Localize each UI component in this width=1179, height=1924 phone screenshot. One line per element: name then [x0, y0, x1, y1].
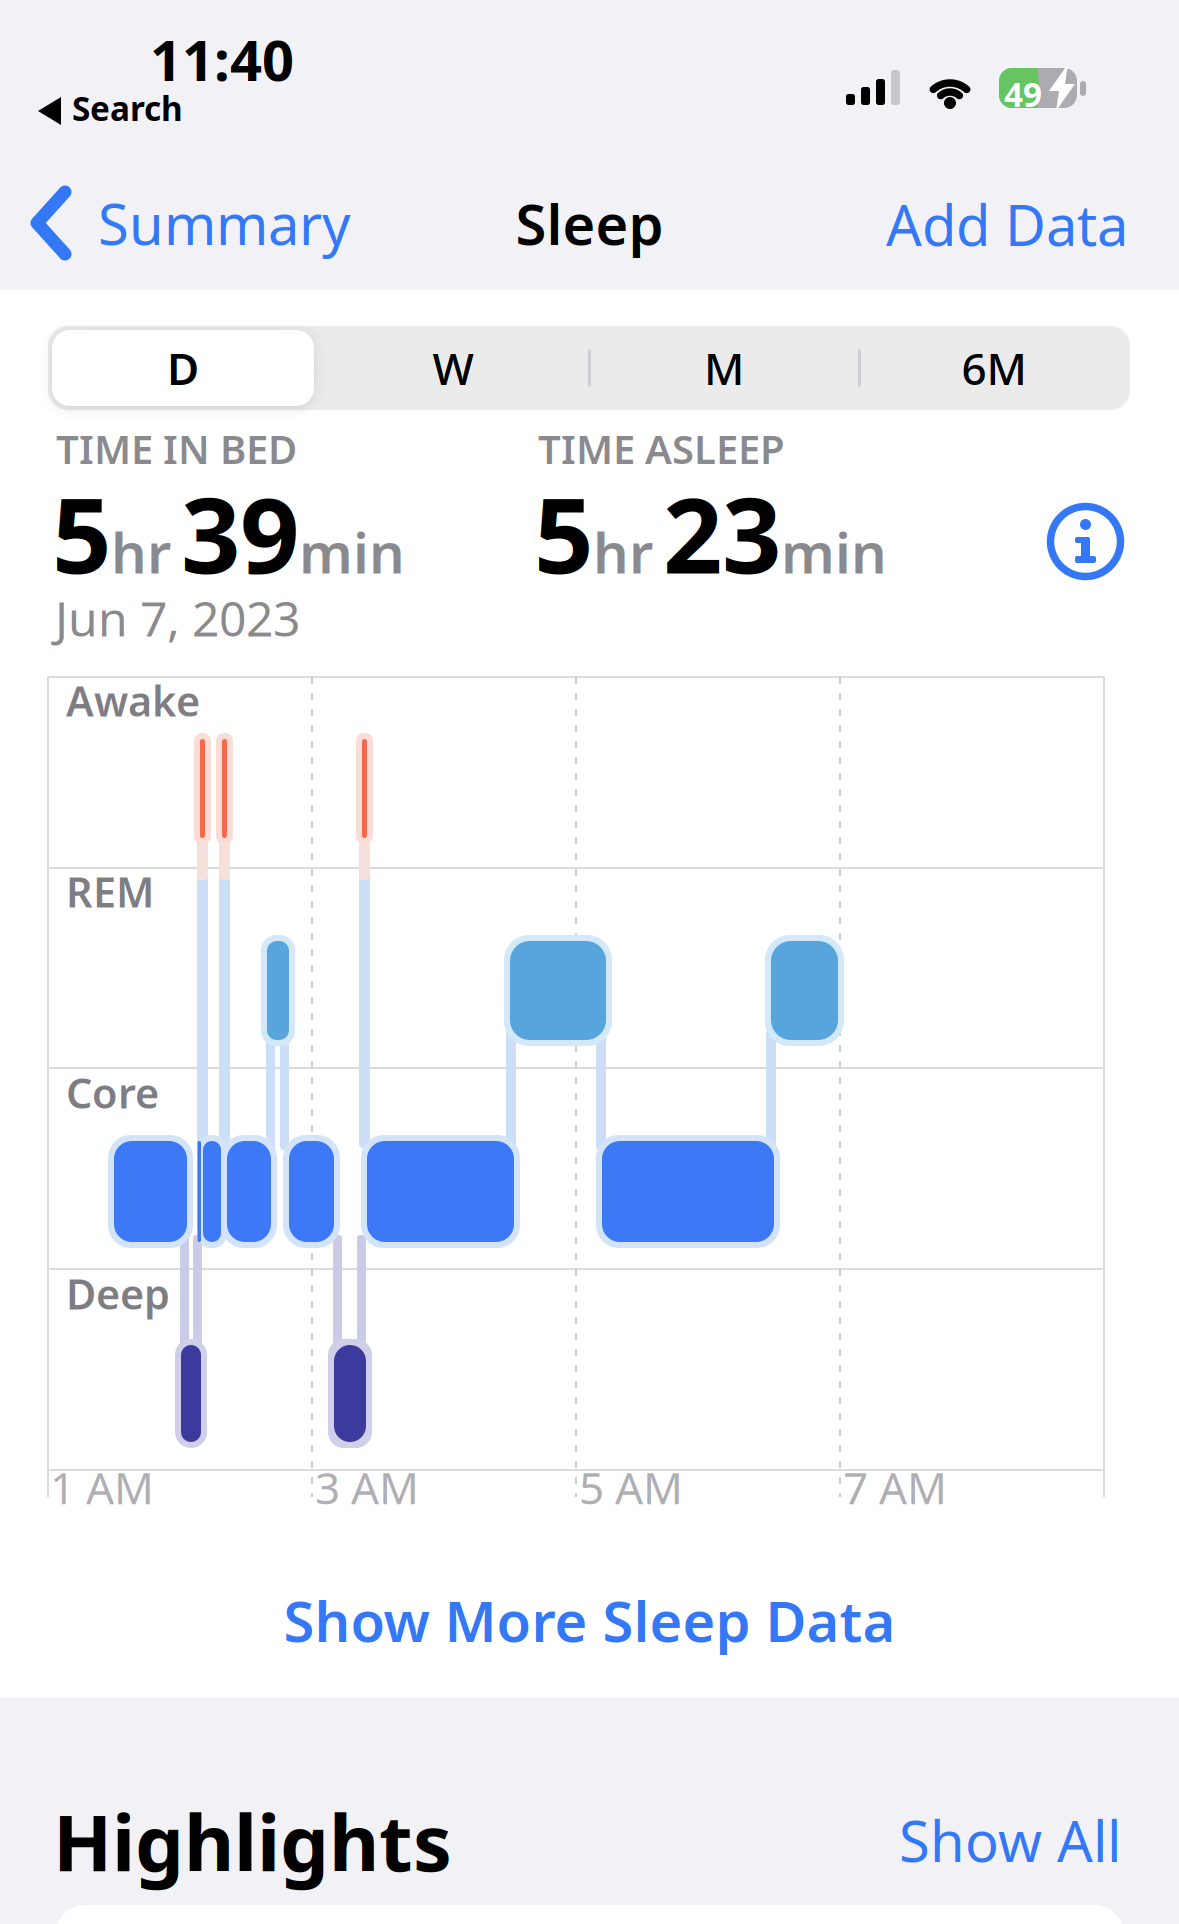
- button[interactable]: M: [589, 326, 859, 410]
- staticText: 5: [534, 464, 593, 602]
- staticText: 39: [181, 464, 299, 602]
- button[interactable]: Show More Sleep Data: [0, 0, 1179, 74]
- staticText: Show All: [899, 1803, 1121, 1877]
- staticText: 5: [52, 464, 111, 602]
- button[interactable]: Show All: [0, 0, 222, 74]
- button[interactable]: Add Data: [0, 0, 242, 74]
- staticText: TIME ASLEEP: [538, 422, 785, 475]
- staticText: 5 AM: [579, 1458, 683, 1516]
- staticText: hr: [593, 514, 653, 589]
- staticText: Summary: [98, 186, 351, 260]
- staticText: Core: [66, 1065, 159, 1120]
- button[interactable]: [0, 0, 1179, 1924]
- button[interactable]: Summary: [0, 0, 1179, 1924]
- staticText: Jun 7, 2023: [55, 586, 300, 650]
- staticText: 1 AM: [50, 1458, 154, 1516]
- staticText: Show More Sleep Data: [283, 1583, 895, 1657]
- staticText: 3 AM: [315, 1458, 419, 1516]
- staticText: Highlights: [53, 1790, 452, 1893]
- button[interactable]: D: [52, 330, 314, 406]
- staticText: min: [299, 514, 405, 589]
- staticText: hr: [111, 514, 171, 589]
- staticText: M: [704, 339, 744, 397]
- staticText: REM: [66, 864, 154, 919]
- button[interactable]: W: [318, 326, 588, 410]
- staticText: Awake: [66, 673, 200, 728]
- staticText: TIME IN BED: [56, 422, 297, 475]
- staticText: D: [167, 339, 199, 397]
- staticText: 7 AM: [843, 1458, 947, 1516]
- staticText: Deep: [66, 1266, 170, 1321]
- button[interactable]: 6M: [859, 326, 1129, 410]
- staticText: W: [432, 339, 473, 397]
- staticText: min: [781, 514, 887, 589]
- staticText: 11:40: [150, 22, 294, 96]
- staticText: 23: [663, 464, 781, 602]
- staticText: Sleep: [515, 186, 663, 260]
- staticText: 49: [1004, 72, 1042, 116]
- staticText: Search: [72, 86, 183, 130]
- staticText: Add Data: [886, 187, 1128, 261]
- staticText: 6M: [961, 339, 1026, 397]
